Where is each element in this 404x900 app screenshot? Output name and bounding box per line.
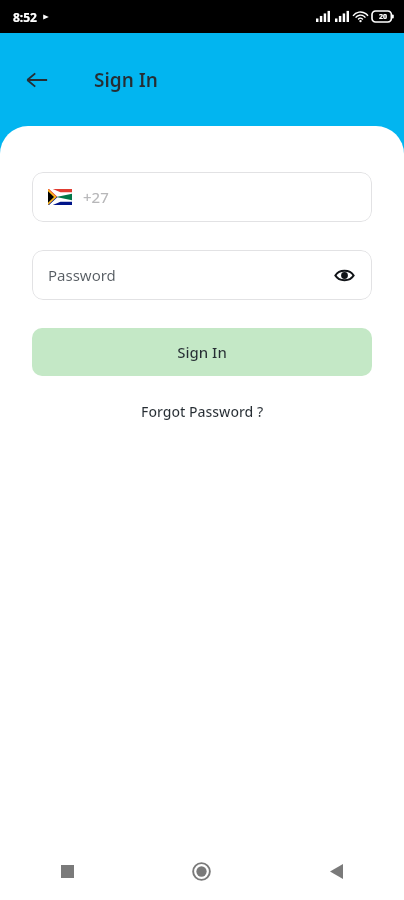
staticText: Password xyxy=(48,265,330,285)
button[interactable]: Back xyxy=(269,842,404,900)
button[interactable]: Home xyxy=(134,842,269,900)
button[interactable]: Sign In xyxy=(32,328,372,376)
button[interactable]: Show password xyxy=(330,261,358,289)
staticText: Forgot Password ? xyxy=(141,402,264,421)
staticText: 8:52 xyxy=(13,9,37,25)
staticText: 20 xyxy=(379,12,388,22)
button[interactable]: Password xyxy=(32,250,372,300)
button[interactable]: +27 xyxy=(32,172,372,222)
staticText: Sign In xyxy=(94,67,158,93)
button[interactable]: Forgot Password ? xyxy=(133,398,272,425)
button[interactable]: Recents xyxy=(0,842,134,900)
staticText: +27 xyxy=(83,187,109,207)
staticText: Sign In xyxy=(177,342,227,362)
button[interactable]: Back xyxy=(18,61,56,99)
